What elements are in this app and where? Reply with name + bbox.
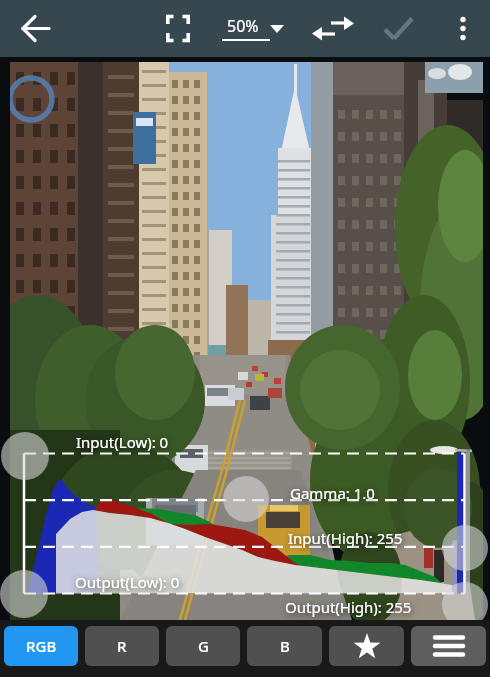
staticText: 50% [227,15,259,37]
button[interactable] [376,0,420,57]
button[interactable] [444,0,482,57]
button[interactable] [156,0,200,57]
staticText: Output(High): 255 [285,597,412,617]
button[interactable]: R [85,626,159,666]
button[interactable]: B [247,626,322,666]
button[interactable] [329,626,404,666]
staticText: RGB [26,636,57,656]
button[interactable] [310,0,356,57]
button[interactable]: G [166,626,240,666]
staticText: B [280,636,290,656]
button[interactable] [411,626,486,666]
staticText: G [198,636,209,656]
button[interactable]: RGB [4,626,78,666]
staticText: Gamma: 1.0 [290,483,375,503]
button[interactable] [14,0,58,57]
staticText: R [117,636,127,656]
button[interactable]: 50% [214,0,292,57]
staticText: Output(Low): 0 [75,572,180,592]
staticText: Input(Low): 0 [76,432,169,452]
staticText: Input(High): 255 [288,528,403,548]
